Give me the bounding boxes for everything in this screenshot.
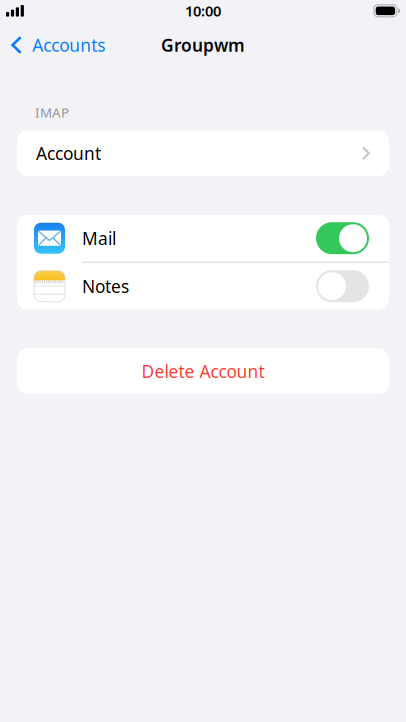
button[interactable]: Account: [17, 130, 389, 176]
staticText: Notes: [82, 275, 129, 298]
button[interactable]: Notes: [17, 263, 389, 310]
button[interactable]: Accounts: [0, 28, 113, 61]
staticText: Groupwm: [161, 33, 245, 56]
button[interactable]: Mail: [17, 215, 389, 262]
button[interactable]: Delete Account: [17, 348, 389, 394]
staticText: Mail: [82, 227, 116, 250]
staticText: Delete Account: [141, 360, 264, 383]
staticText: IMAP: [35, 103, 69, 121]
staticText: Accounts: [32, 33, 105, 56]
staticText: 10:00: [185, 1, 221, 21]
staticText: Account: [36, 142, 101, 165]
